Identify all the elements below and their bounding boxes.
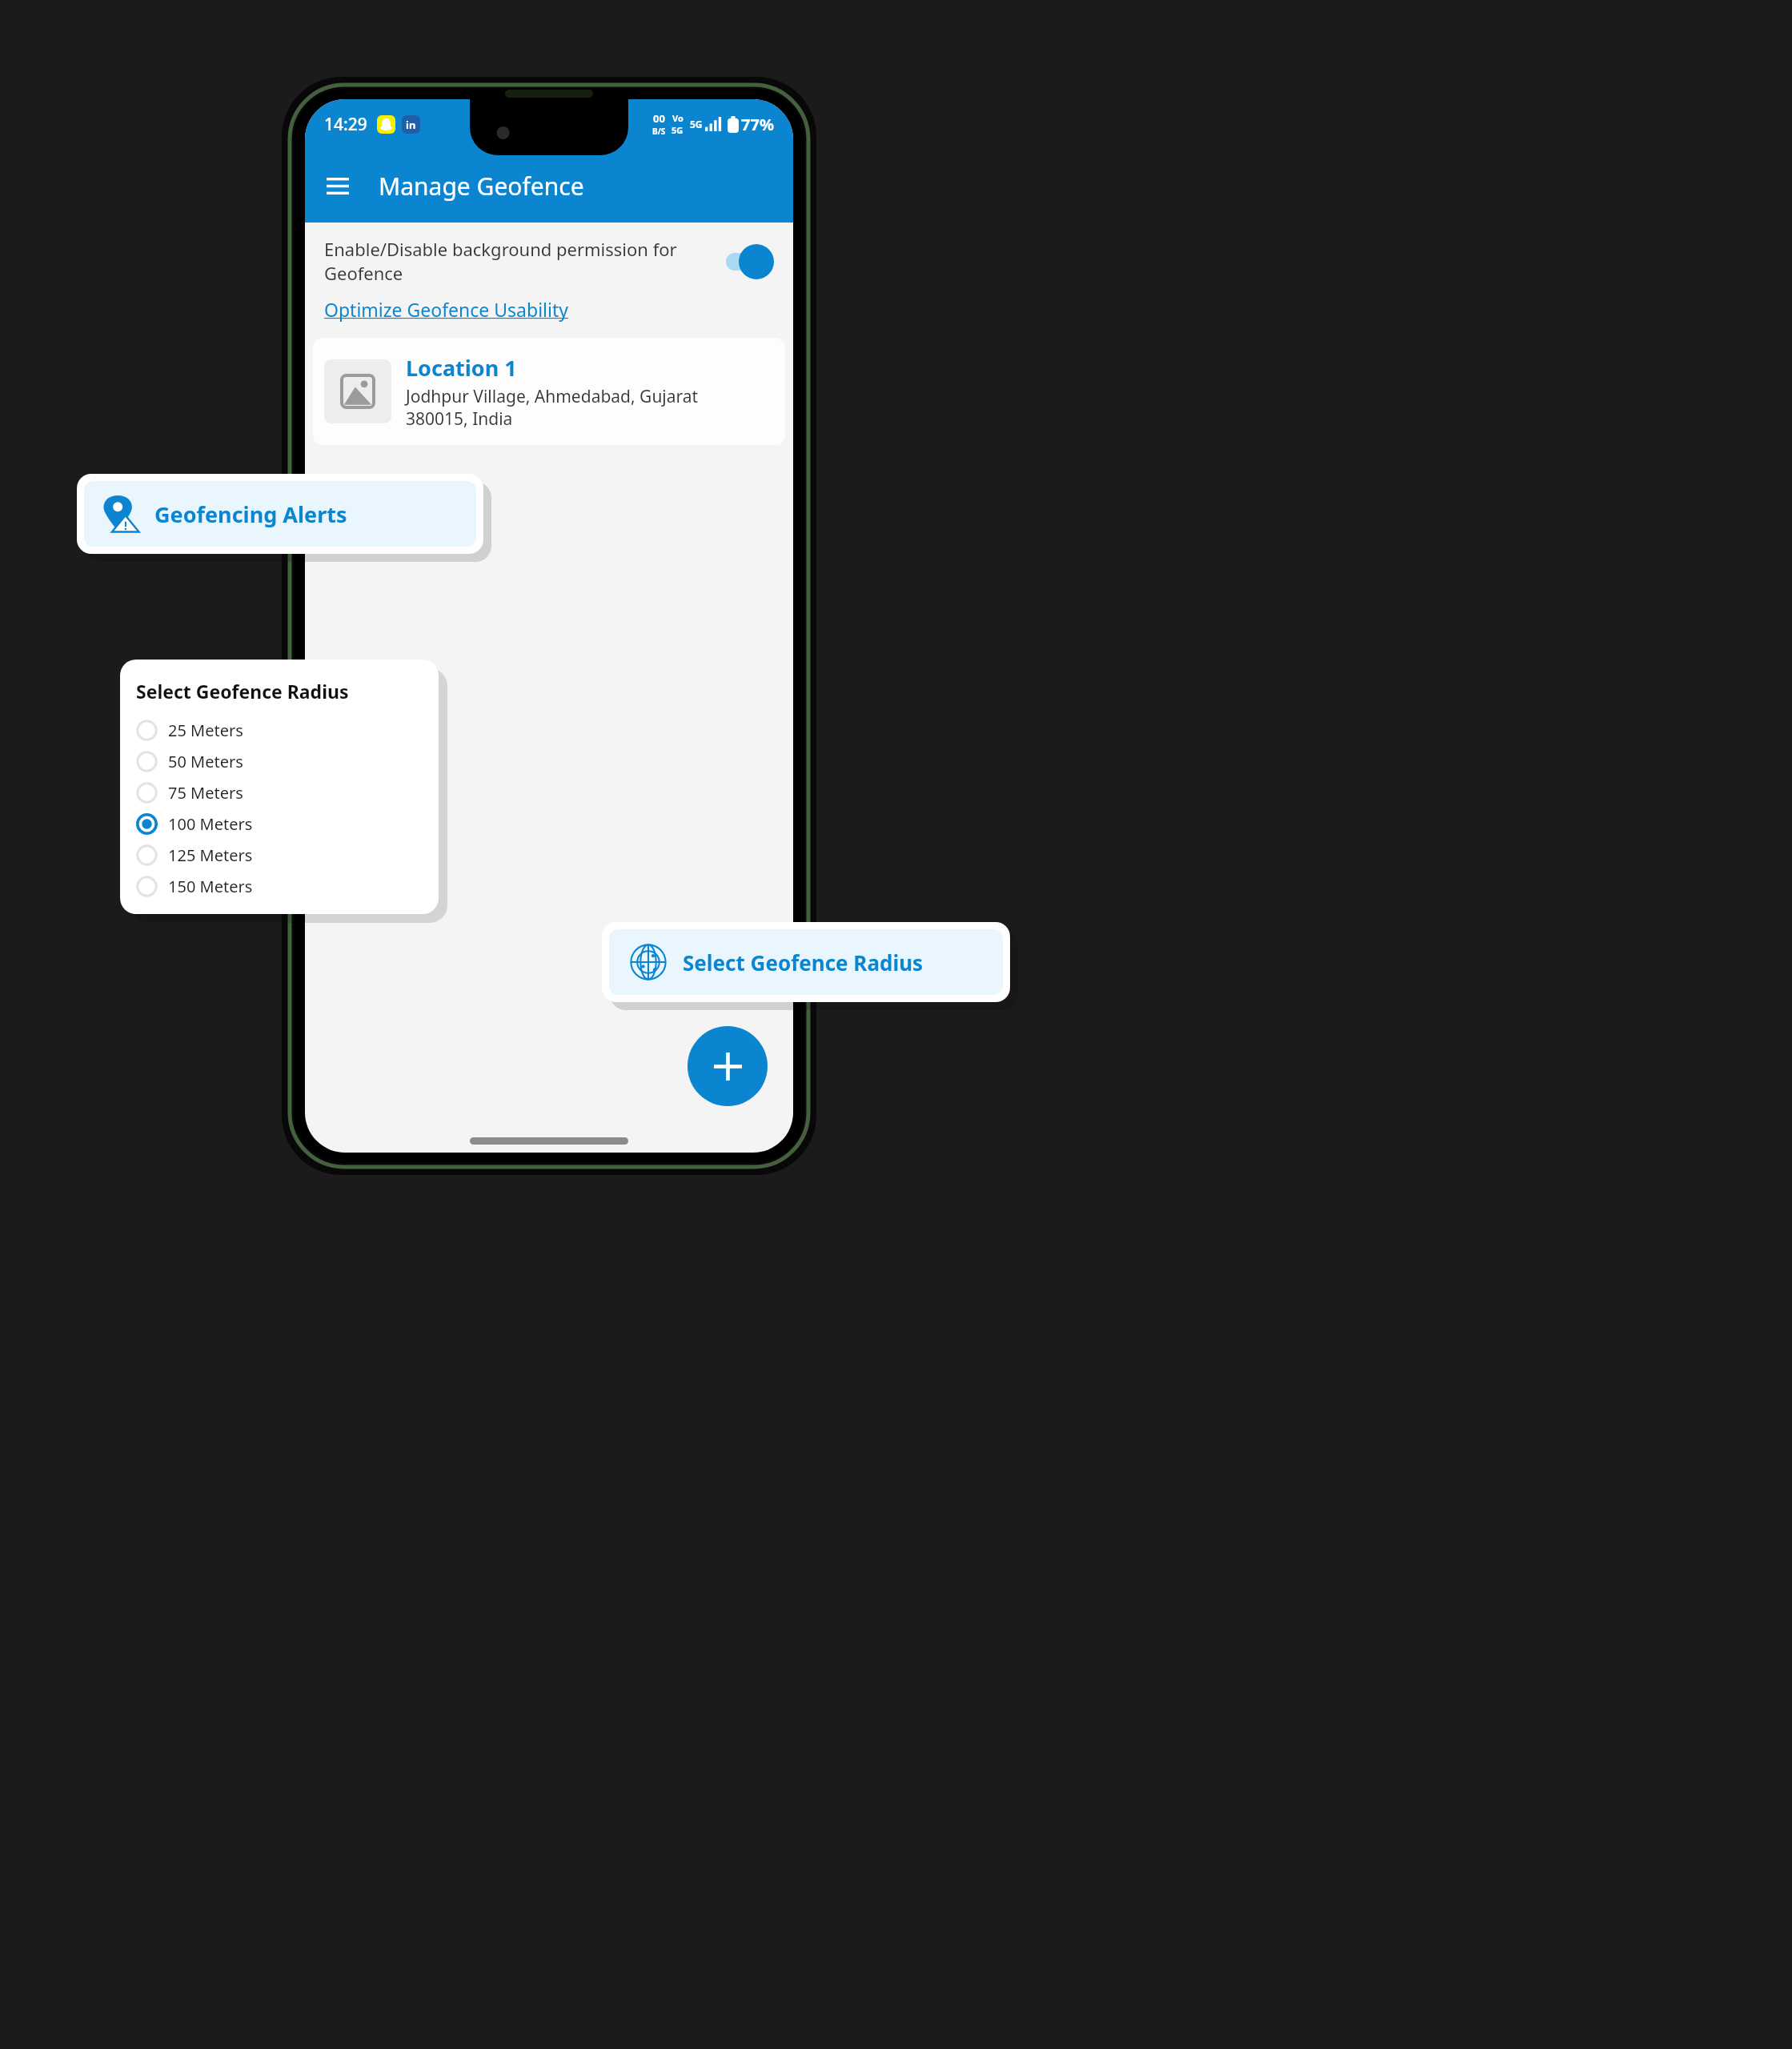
staticText: 5G bbox=[671, 124, 684, 136]
staticText: Enable/Disable background permission for… bbox=[324, 237, 716, 286]
staticText: 14:29 bbox=[324, 113, 367, 136]
staticText: 150 Meters bbox=[168, 876, 253, 897]
button[interactable]: 100 Meters bbox=[136, 808, 439, 840]
button[interactable]: 75 Meters bbox=[136, 777, 439, 808]
staticText: Manage Geofence bbox=[379, 170, 584, 202]
button[interactable]: Optimize Geofence Usability bbox=[324, 297, 568, 322]
button[interactable]: Background permission toggle bbox=[724, 243, 776, 280]
staticText: Select Geofence Radius bbox=[136, 679, 349, 704]
staticText: in bbox=[406, 118, 416, 132]
staticText: Location 1 bbox=[406, 353, 517, 383]
button[interactable]: 25 Meters bbox=[136, 715, 439, 746]
staticText: B/S bbox=[652, 126, 666, 137]
button[interactable]: Add geofence bbox=[688, 1026, 768, 1106]
staticText: Select Geofence Radius bbox=[683, 948, 924, 976]
staticText: 77% bbox=[741, 114, 774, 135]
button[interactable]: Open navigation menu bbox=[316, 164, 359, 207]
staticText: 125 Meters bbox=[168, 844, 253, 866]
button[interactable]: Select Geofence Radius bbox=[602, 922, 1010, 1002]
button[interactable]: Geofencing Alerts bbox=[77, 474, 483, 554]
button[interactable]: 150 Meters bbox=[136, 871, 439, 902]
staticText: 25 Meters bbox=[168, 720, 243, 741]
staticText: Vo bbox=[672, 112, 684, 124]
staticText: Optimize Geofence Usability bbox=[324, 297, 568, 322]
button[interactable]: 125 Meters bbox=[136, 840, 439, 871]
staticText: 00 bbox=[653, 111, 665, 126]
staticText: Jodhpur Village, Ahmedabad, Gujarat 3800… bbox=[406, 385, 699, 430]
staticText: 50 Meters bbox=[168, 751, 243, 772]
staticText: 100 Meters bbox=[168, 813, 253, 835]
staticText: 5G bbox=[690, 118, 703, 130]
button[interactable]: Location 1 bbox=[313, 338, 785, 445]
staticText: Geofencing Alerts bbox=[154, 499, 347, 529]
button[interactable]: 50 Meters bbox=[136, 746, 439, 777]
staticText: 75 Meters bbox=[168, 782, 243, 804]
